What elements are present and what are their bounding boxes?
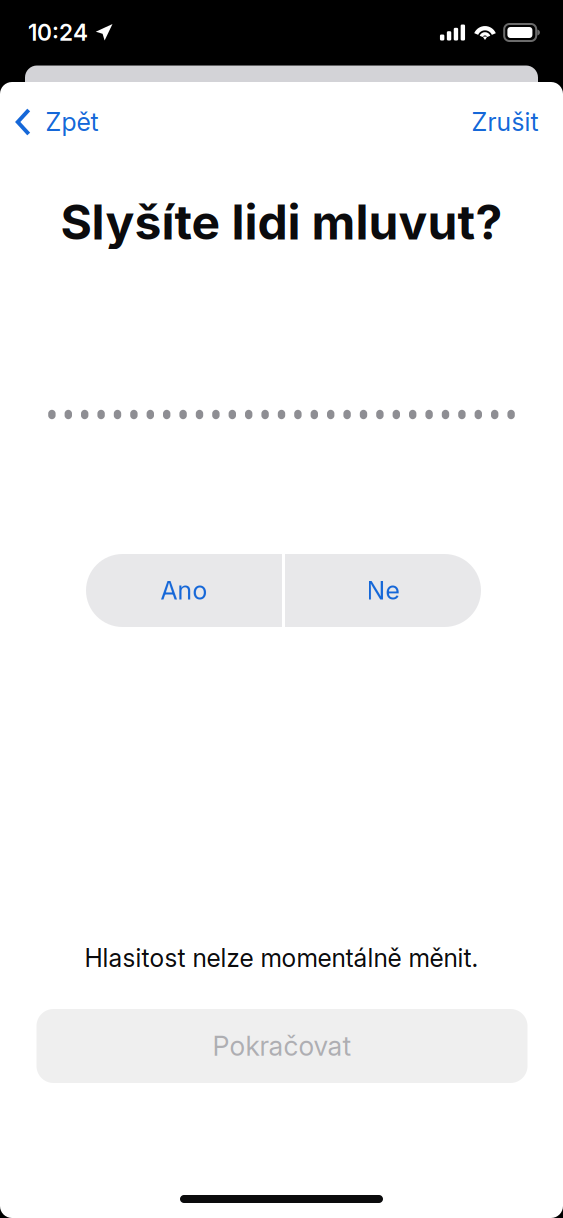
button[interactable]: Ne [285, 554, 481, 627]
staticText: 10:24 [28, 19, 88, 46]
staticText: Ne [366, 575, 399, 606]
staticText: Ano [160, 575, 207, 606]
button[interactable]: Ano [86, 554, 282, 627]
button[interactable]: Pokračovat [36, 1009, 527, 1083]
staticText: Slyšíte lidi mluvut? [60, 193, 502, 251]
button[interactable]: Zrušit [455, 99, 558, 145]
staticText: Zpět [45, 107, 98, 137]
staticText: Pokračovat [212, 1030, 351, 1062]
button[interactable]: Zpět [1, 99, 112, 145]
staticText: Hlasitost nelze momentálně měnit. [84, 943, 478, 973]
staticText: Zrušit [471, 107, 538, 137]
